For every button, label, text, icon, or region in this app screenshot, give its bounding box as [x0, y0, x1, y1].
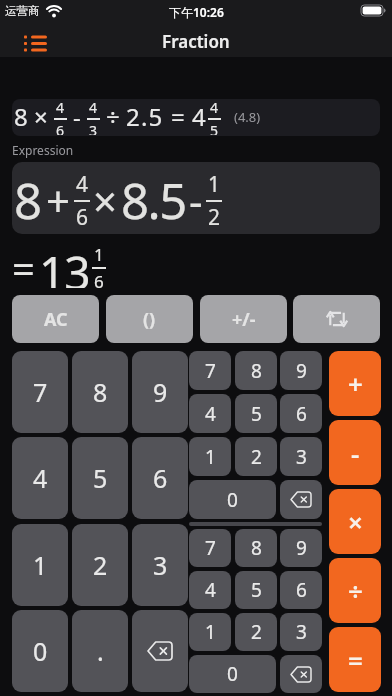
staticText: 7: [205, 358, 216, 384]
staticText: 5: [251, 577, 262, 603]
button[interactable]: 4: [12, 437, 68, 519]
button[interactable]: [280, 480, 322, 519]
staticText: 3: [296, 619, 307, 645]
staticText: ×: [93, 172, 118, 229]
button[interactable]: 9: [132, 351, 188, 433]
staticText: 下午10:26: [169, 4, 224, 20]
staticText: 0: [227, 661, 238, 687]
staticText: 2: [208, 203, 221, 232]
staticText: 0: [33, 634, 48, 668]
staticText: 1: [205, 444, 216, 470]
button[interactable]: 6: [132, 437, 188, 519]
staticText: 8: [251, 358, 262, 384]
staticText: 2: [251, 619, 262, 645]
staticText: Expression: [12, 142, 74, 158]
button[interactable]: 8: [12, 162, 380, 234]
staticText: -: [189, 172, 203, 229]
button[interactable]: 0: [189, 655, 276, 693]
staticText: 1: [94, 243, 104, 266]
staticText: ÷: [106, 100, 120, 133]
staticText: 1: [33, 548, 48, 582]
button[interactable]: [24, 31, 56, 55]
button[interactable]: 3: [280, 437, 322, 476]
button[interactable]: (): [106, 295, 193, 343]
staticText: 7: [205, 535, 216, 561]
staticText: -: [351, 435, 360, 470]
button[interactable]: ×: [329, 489, 381, 554]
staticText: 4: [205, 577, 216, 603]
staticText: 4: [89, 98, 98, 117]
staticText: +: [46, 172, 71, 229]
button[interactable]: 2: [235, 613, 277, 651]
button[interactable]: 1: [189, 613, 231, 651]
button[interactable]: 3: [132, 524, 188, 606]
staticText: 8: [14, 100, 28, 133]
staticText: 8: [14, 167, 43, 234]
staticText: 13: [39, 241, 90, 288]
button[interactable]: .: [72, 610, 128, 692]
staticText: 2: [251, 444, 262, 470]
staticText: 1: [205, 619, 216, 645]
staticText: =: [171, 100, 185, 133]
button[interactable]: 5: [235, 394, 277, 433]
button[interactable]: 1: [189, 437, 231, 476]
staticText: 4: [33, 461, 48, 495]
staticText: 4: [192, 100, 206, 133]
button[interactable]: 6: [280, 394, 322, 433]
staticText: ×: [348, 504, 363, 539]
button[interactable]: 9: [280, 529, 322, 567]
button[interactable]: 5: [72, 437, 128, 519]
button[interactable]: [293, 295, 380, 343]
staticText: AC: [44, 307, 68, 332]
button[interactable]: +: [329, 351, 381, 416]
staticText: 5: [210, 121, 219, 135]
button[interactable]: =: [329, 627, 381, 692]
staticText: 6: [153, 461, 168, 495]
staticText: 1: [208, 170, 221, 199]
button[interactable]: 1: [12, 524, 68, 606]
staticText: 6: [76, 203, 89, 232]
staticText: (4.8): [234, 108, 261, 126]
button[interactable]: 7: [189, 351, 231, 390]
staticText: =: [12, 241, 35, 288]
staticText: 7: [33, 375, 48, 409]
button[interactable]: 3: [280, 613, 322, 651]
button[interactable]: ÷: [329, 558, 381, 623]
staticText: 0: [227, 487, 238, 513]
staticText: 6: [296, 401, 307, 427]
button[interactable]: 8: [235, 351, 277, 390]
button[interactable]: 0: [12, 610, 68, 692]
staticText: 5: [251, 401, 262, 427]
button[interactable]: 0: [189, 480, 276, 519]
button[interactable]: 8: [12, 99, 380, 136]
staticText: 9: [296, 358, 307, 384]
button[interactable]: 9: [280, 351, 322, 390]
staticText: 9: [296, 535, 307, 561]
button[interactable]: 4: [189, 571, 231, 609]
staticText: 8: [251, 535, 262, 561]
button[interactable]: 5: [235, 571, 277, 609]
button[interactable]: 7: [12, 351, 68, 433]
button[interactable]: 8: [235, 529, 277, 567]
button[interactable]: -: [329, 420, 381, 485]
button[interactable]: [132, 610, 188, 692]
staticText: 4: [210, 98, 219, 117]
staticText: (): [143, 307, 156, 332]
staticText: =: [348, 642, 363, 677]
staticText: ÷: [348, 573, 363, 608]
button[interactable]: 6: [280, 571, 322, 609]
button[interactable]: 8: [72, 351, 128, 433]
button[interactable]: 4: [189, 394, 231, 433]
button[interactable]: 7: [189, 529, 231, 567]
button[interactable]: +/-: [200, 295, 287, 343]
button[interactable]: [280, 655, 322, 693]
staticText: 3: [153, 548, 168, 582]
button[interactable]: 2: [72, 524, 128, 606]
staticText: +/-: [232, 307, 256, 332]
button[interactable]: 2: [235, 437, 277, 476]
button[interactable]: AC: [12, 295, 99, 343]
staticText: 6: [296, 577, 307, 603]
staticText: -: [73, 100, 81, 133]
staticText: 2: [93, 548, 108, 582]
staticText: 4: [56, 98, 65, 117]
